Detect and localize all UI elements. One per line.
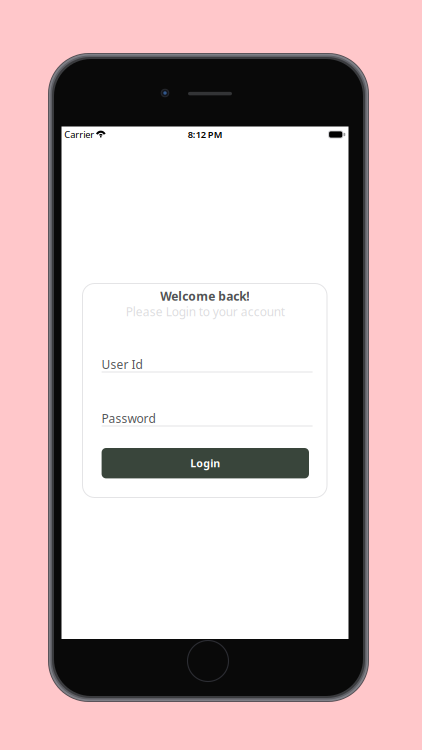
button[interactable]: User Id: [102, 357, 313, 374]
button[interactable]: Password: [102, 411, 313, 428]
staticText: Welcome back!: [160, 288, 249, 304]
staticText: 8:12 PM: [188, 128, 223, 141]
button[interactable]: Login: [102, 448, 309, 478]
staticText: Please Login to your account: [126, 303, 285, 319]
staticText: Carrier: [64, 128, 94, 141]
staticText: Password: [102, 410, 156, 426]
staticText: Login: [190, 456, 220, 470]
staticText: User Id: [102, 356, 143, 372]
